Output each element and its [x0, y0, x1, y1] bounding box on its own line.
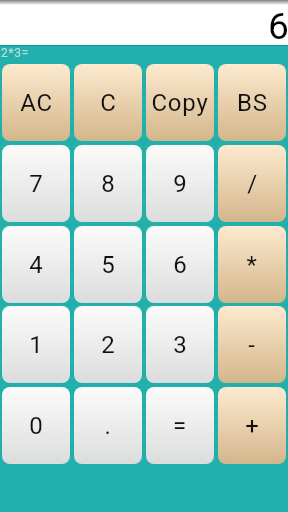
staticText: - [248, 331, 256, 359]
staticText: 4 [29, 251, 44, 279]
button[interactable]: / [218, 145, 286, 222]
staticText: 2*3= [1, 46, 30, 60]
staticText: Copy [151, 89, 209, 117]
staticText: 1 [29, 331, 44, 359]
staticText: * [246, 251, 258, 279]
button[interactable]: 3 [146, 306, 214, 383]
button[interactable]: . [74, 387, 142, 464]
staticText: AC [20, 89, 53, 117]
staticText: / [247, 170, 258, 198]
staticText: + [245, 412, 260, 440]
button[interactable]: Copy [146, 64, 214, 141]
staticText: 0 [29, 412, 44, 440]
button[interactable]: 5 [74, 226, 142, 303]
staticText: 8 [101, 170, 116, 198]
staticText: 7 [29, 170, 44, 198]
button[interactable]: 4 [2, 226, 70, 303]
staticText: 6 [268, 5, 288, 45]
staticText: 9 [173, 170, 188, 198]
button[interactable]: C [74, 64, 142, 141]
button[interactable]: - [218, 306, 286, 383]
staticText: = [173, 412, 187, 440]
button[interactable]: * [218, 226, 286, 303]
button[interactable]: 0 [2, 387, 70, 464]
button[interactable]: 8 [74, 145, 142, 222]
staticText: 2 [101, 331, 116, 359]
button[interactable]: 7 [2, 145, 70, 222]
staticText: C [100, 89, 117, 117]
button[interactable]: 2 [74, 306, 142, 383]
button[interactable]: + [218, 387, 286, 464]
staticText: 6 [173, 251, 188, 279]
staticText: . [104, 412, 112, 440]
button[interactable]: = [146, 387, 214, 464]
staticText: BS [237, 89, 268, 117]
button[interactable]: 6 [146, 226, 214, 303]
staticText: 5 [101, 251, 116, 279]
button[interactable]: BS [218, 64, 286, 141]
button[interactable]: 9 [146, 145, 214, 222]
staticText: 3 [173, 331, 188, 359]
button[interactable]: AC [2, 64, 70, 141]
button[interactable]: 1 [2, 306, 70, 383]
